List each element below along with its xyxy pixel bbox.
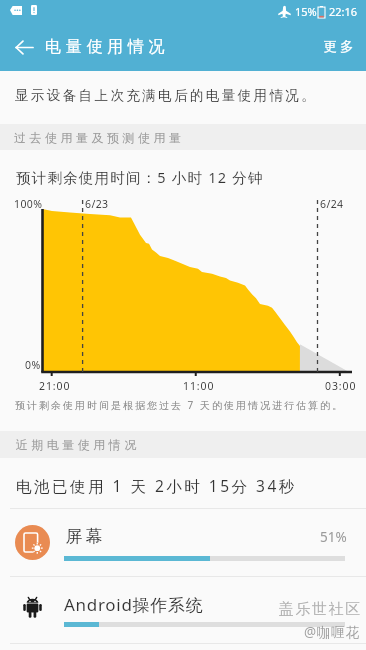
staticText: 6/23 — [85, 197, 109, 211]
staticText: 21:00 — [39, 379, 71, 393]
staticText: 屏幕 — [64, 526, 104, 547]
button[interactable]: 更多 — [308, 28, 366, 65]
staticText: @咖喱花 — [304, 623, 360, 641]
staticText: 22:16 — [329, 4, 358, 19]
staticText: 预计剩余使用时间是根据您过去 7 天的使用情况进行估算的。 — [15, 398, 344, 412]
button[interactable]: 屏幕 — [0, 509, 366, 576]
staticText: Android操作系统 — [64, 593, 204, 616]
staticText: 显示设备自上次充满电后的电量使用情况。 — [15, 87, 318, 104]
staticText: 近期电量使用情况 — [14, 437, 138, 452]
staticText: 6/24 — [320, 197, 344, 211]
staticText: 电池已使用 1 天 2小时 15分 34秒 — [16, 475, 297, 496]
staticText: 过去使用量及预测使用量 — [14, 130, 185, 145]
staticText: 11:00 — [183, 379, 215, 393]
staticText: 03:00 — [325, 379, 357, 393]
staticText: 0% — [25, 358, 41, 372]
staticText: 预计剩余使用时间：5 小时 12 分钟 — [16, 167, 264, 187]
staticText: 15% — [295, 4, 317, 19]
staticText: 51% — [320, 528, 347, 546]
staticText: 100% — [14, 197, 43, 211]
staticText: 更多 — [322, 38, 355, 55]
button[interactable]: Back — [4, 27, 44, 67]
staticText: 盖乐世社区 — [278, 600, 361, 619]
button[interactable]: Android操作系统 — [0, 577, 366, 643]
staticText: 电量使用情况 — [45, 37, 170, 57]
